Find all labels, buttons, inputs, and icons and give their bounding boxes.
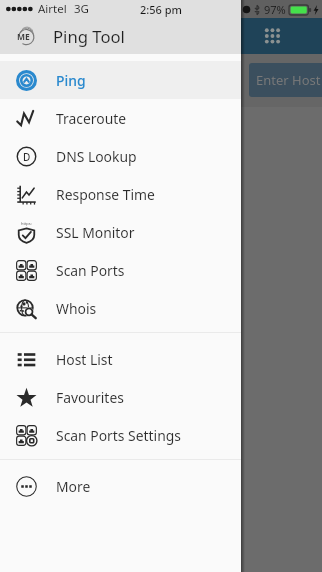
staticText: https: (21, 221, 32, 226)
button[interactable]: Scan Ports Settings (0, 416, 241, 454)
button[interactable]: App logo (0, 18, 241, 54)
staticText: DNS Lookup (56, 147, 137, 166)
button[interactable]: Keypad (260, 22, 286, 48)
button[interactable]: Enter Host Na (249, 63, 322, 97)
button[interactable]: Host List (0, 340, 241, 378)
staticText: Traceroute (56, 109, 127, 128)
staticText: D (23, 150, 31, 164)
button[interactable]: Response Time (0, 175, 241, 213)
button[interactable]: Traceroute (0, 99, 241, 137)
staticText: More (56, 477, 91, 496)
staticText: Scan Ports Settings (56, 426, 181, 445)
other: App logo (17, 27, 35, 45)
button[interactable]: More (0, 467, 241, 505)
staticText: Favourites (56, 388, 124, 407)
staticText: Ping Tool (53, 25, 125, 48)
button[interactable]: Ping (0, 61, 241, 99)
staticText: SSL Monitor (56, 223, 135, 242)
staticText: Response Time (56, 185, 155, 204)
staticText: Ping (56, 71, 86, 90)
staticText: Scan Ports (56, 261, 125, 280)
staticText: 3G (74, 1, 89, 17)
staticText: 97% (264, 2, 286, 17)
staticText: 2:56 pm (140, 2, 182, 17)
staticText: ME (17, 31, 30, 43)
staticText: Airtel (38, 1, 67, 17)
button[interactable]: Scan Ports (0, 251, 241, 289)
staticText: Host List (56, 350, 113, 369)
staticText: Whois (56, 299, 97, 318)
button[interactable]: D (0, 137, 241, 175)
staticText: Enter Host Na (256, 71, 322, 89)
button[interactable]: https: (0, 213, 241, 251)
button[interactable]: Whois (0, 289, 241, 327)
button[interactable]: Favourites (0, 378, 241, 416)
